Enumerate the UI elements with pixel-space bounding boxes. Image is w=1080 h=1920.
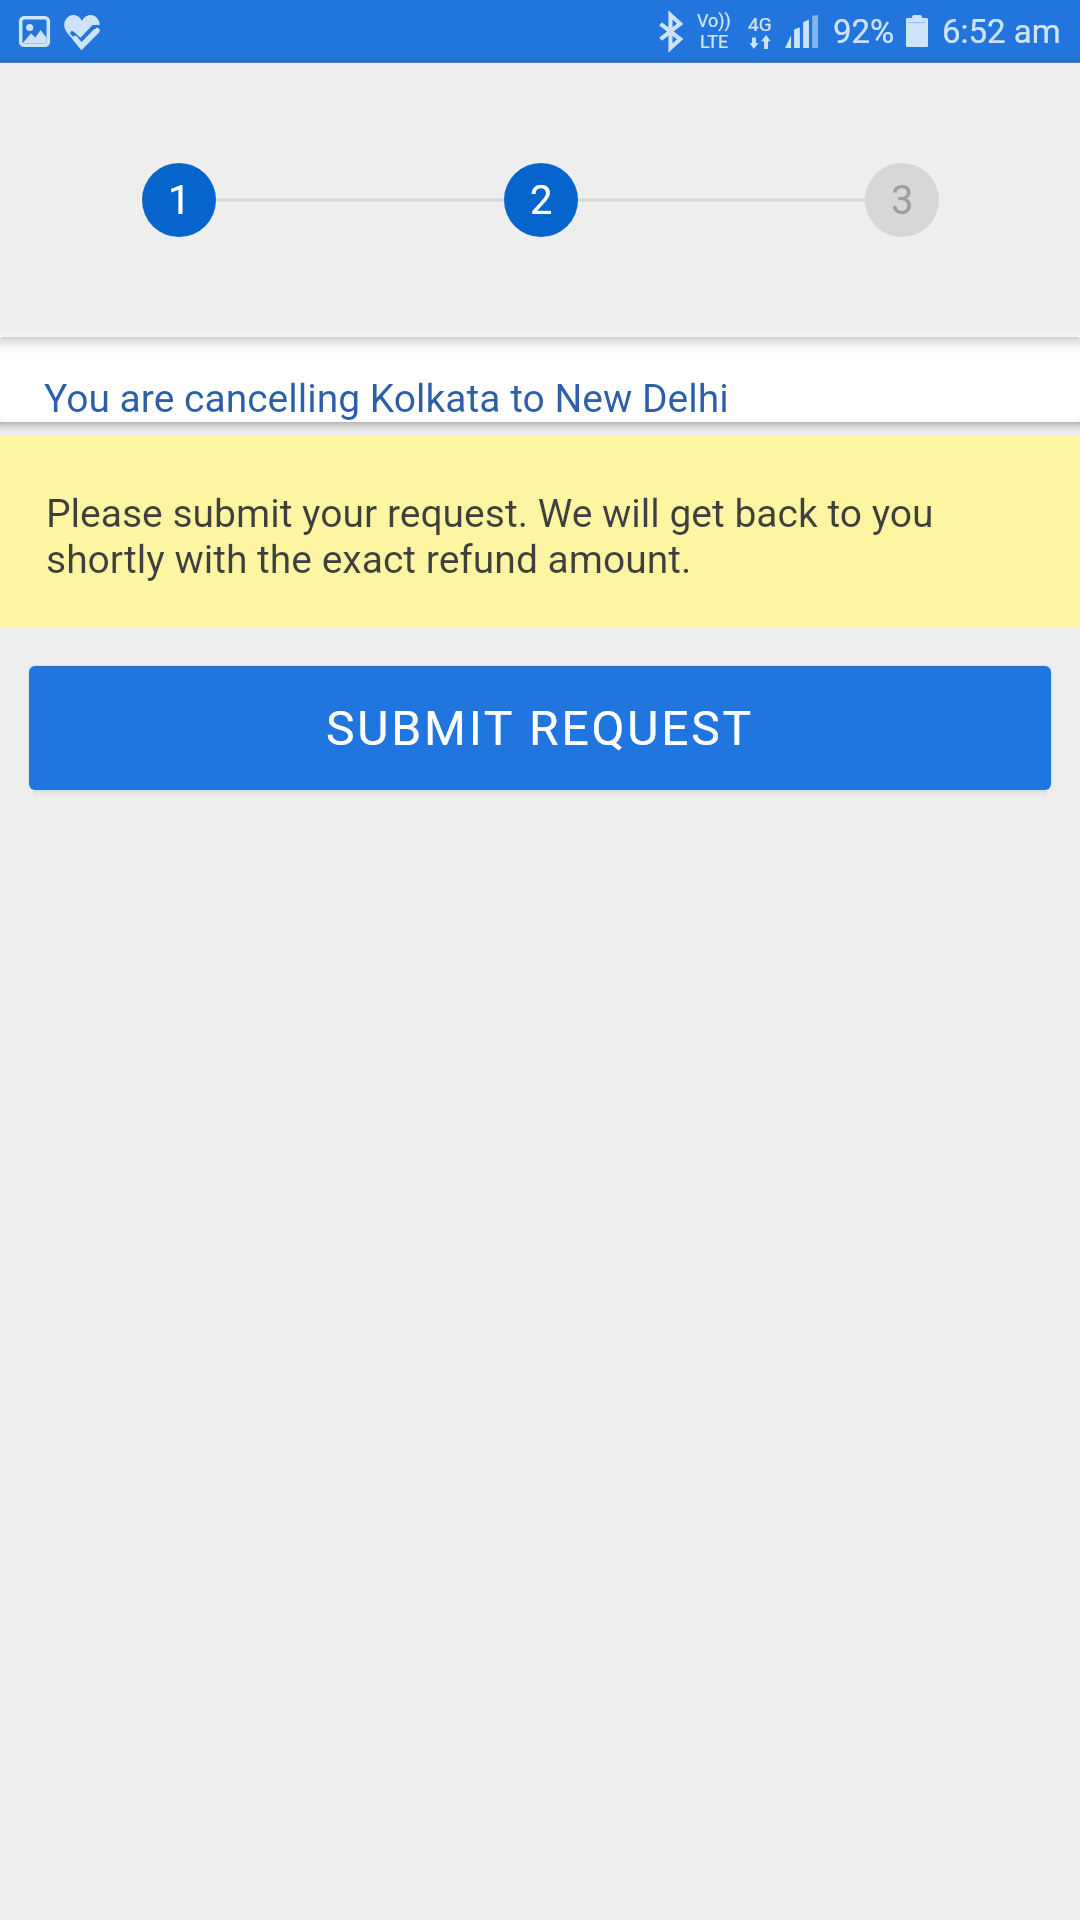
staticText: 92% (833, 12, 895, 51)
staticText: LTE (700, 31, 729, 52)
other: Health notification (63, 14, 101, 48)
other: Screenshot notification (19, 16, 50, 47)
staticText: 6:52 am (942, 12, 1061, 51)
staticText: 1 (168, 177, 191, 224)
staticText: 3 (891, 177, 914, 224)
other: Bluetooth on (658, 14, 684, 49)
other: Data transfer (749, 35, 771, 49)
staticText: Please submit your request. We will get … (46, 491, 1034, 583)
staticText: Vo)) (697, 10, 731, 31)
other: Mobile signal strength (785, 15, 818, 48)
staticText: SUBMIT REQUEST (326, 700, 755, 756)
staticText: 2 (530, 177, 553, 224)
other: Battery 92 percent (906, 15, 928, 47)
staticText: You are cancelling Kolkata to New Delhi (44, 376, 729, 422)
button[interactable]: You are cancelling Kolkata to New Delhi (0, 337, 1080, 422)
button[interactable]: SUBMIT REQUEST (29, 666, 1051, 790)
staticText: 4G (748, 13, 772, 35)
button[interactable]: 1 (142, 163, 216, 237)
button[interactable]: 3 (865, 163, 939, 237)
button[interactable]: 2 (504, 163, 578, 237)
